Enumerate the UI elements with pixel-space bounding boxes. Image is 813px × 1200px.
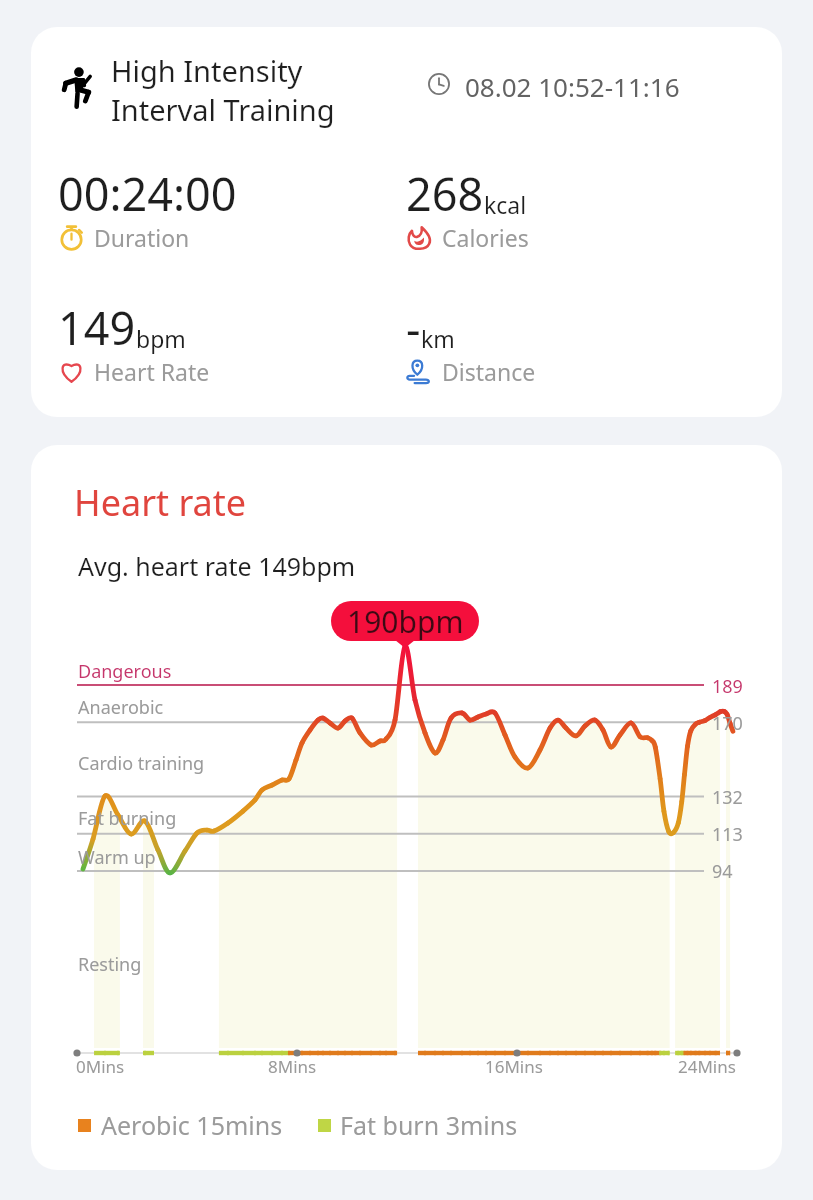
button[interactable]: 190bpm	[331, 601, 479, 641]
staticText: kcal	[484, 189, 527, 220]
button[interactable]: Aerobic 15mins	[78, 1108, 283, 1142]
staticText: Fat burning	[78, 806, 177, 831]
staticText: Distance	[442, 356, 536, 387]
staticText: 08.02 10:52-11:16	[465, 69, 680, 104]
staticText: 113	[712, 822, 743, 847]
staticText: Dangerous	[78, 659, 172, 684]
staticText: High Intensity	[111, 51, 303, 90]
staticText: Resting	[78, 952, 142, 977]
staticText: Warm up	[78, 845, 156, 870]
button[interactable]: Workout type	[31, 27, 782, 417]
staticText: Heart Rate	[94, 356, 210, 387]
staticText: 190bpm	[347, 601, 464, 641]
staticText: Interval Training	[111, 90, 335, 129]
staticText: 00:24:00	[58, 163, 237, 224]
button[interactable]: 00:24:00	[58, 163, 388, 263]
staticText: 149	[58, 297, 136, 358]
button[interactable]: -	[406, 297, 736, 397]
staticText: Fat burn 3mins	[340, 1108, 518, 1142]
staticText: 16Mins	[485, 1055, 543, 1078]
button[interactable]: Heart rate	[31, 445, 782, 1170]
staticText: 8Mins	[268, 1055, 317, 1078]
staticText: Duration	[94, 222, 190, 253]
staticText: 24Mins	[678, 1055, 736, 1078]
staticText: Calories	[442, 222, 529, 253]
staticText: 0Mins	[76, 1055, 125, 1078]
staticText: 94	[712, 859, 733, 884]
other: Time	[427, 72, 451, 96]
button[interactable]: 149	[58, 297, 388, 397]
staticText: km	[421, 323, 455, 354]
button[interactable]: 268	[406, 163, 736, 263]
staticText: Aerobic 15mins	[101, 1108, 283, 1142]
staticText: Cardio training	[78, 751, 205, 776]
button[interactable]: Fat burn 3mins	[318, 1108, 518, 1142]
staticText: 268	[406, 163, 484, 224]
staticText: bpm	[136, 323, 186, 354]
staticText: 189	[712, 674, 743, 699]
other: Workout type	[58, 64, 104, 110]
staticText: 132	[712, 785, 743, 810]
staticText: -	[406, 297, 421, 358]
staticText: 170	[712, 711, 743, 736]
staticText: Heart rate	[74, 478, 247, 527]
staticText: Anaerobic	[78, 695, 164, 720]
staticText: Avg. heart rate 149bpm	[78, 549, 356, 583]
